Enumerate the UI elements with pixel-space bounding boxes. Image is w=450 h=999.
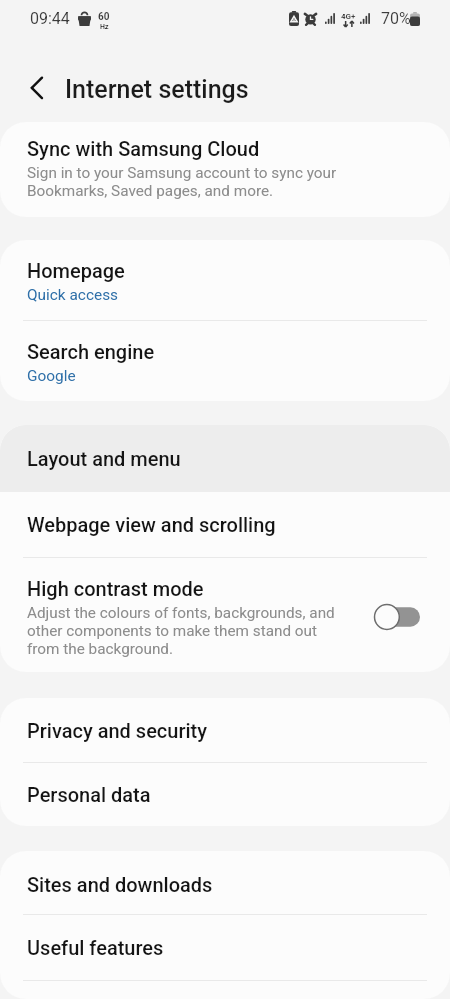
button[interactable]: High contrast mode — [0, 558, 450, 672]
button[interactable]: Layout and menu — [0, 425, 450, 492]
staticText: Adjust the colours of fonts, backgrounds… — [27, 604, 339, 658]
staticText: Sites and downloads — [27, 873, 213, 896]
button[interactable]: Search engine — [0, 321, 450, 401]
staticText: Webpage view and scrolling — [27, 513, 276, 536]
button[interactable]: Webpage view and scrolling — [0, 492, 450, 557]
staticText: Google — [27, 367, 76, 385]
staticText: Layout and menu — [27, 447, 181, 470]
button[interactable]: Sites and downloads — [0, 851, 450, 914]
staticText: Personal data — [27, 783, 151, 806]
button[interactable]: High contrast mode toggle — [374, 604, 420, 630]
button[interactable]: Navigate up — [0, 53, 54, 96]
button[interactable]: Homepage — [0, 240, 450, 320]
staticText: High contrast mode — [27, 577, 204, 600]
staticText: 70% — [381, 9, 411, 28]
staticText: Quick access — [27, 286, 119, 304]
staticText: 4G+ — [341, 12, 356, 21]
staticText: Internet settings — [65, 75, 249, 104]
button[interactable]: Sync with Samsung Cloud — [0, 122, 450, 217]
staticText: Homepage — [27, 259, 125, 282]
button[interactable]: Privacy and security — [0, 698, 450, 762]
button[interactable]: Useful features — [0, 915, 450, 980]
staticText: Sync with Samsung Cloud — [27, 137, 260, 160]
staticText: 60 — [98, 11, 110, 23]
staticText: Hz — [100, 23, 109, 31]
staticText: Privacy and security — [27, 719, 208, 742]
staticText: Useful features — [27, 936, 164, 959]
button[interactable]: Personal data — [0, 763, 450, 826]
staticText: 09:44 — [30, 9, 70, 28]
staticText: Sign in to your Samsung account to sync … — [27, 164, 339, 200]
staticText: Search engine — [27, 340, 155, 363]
